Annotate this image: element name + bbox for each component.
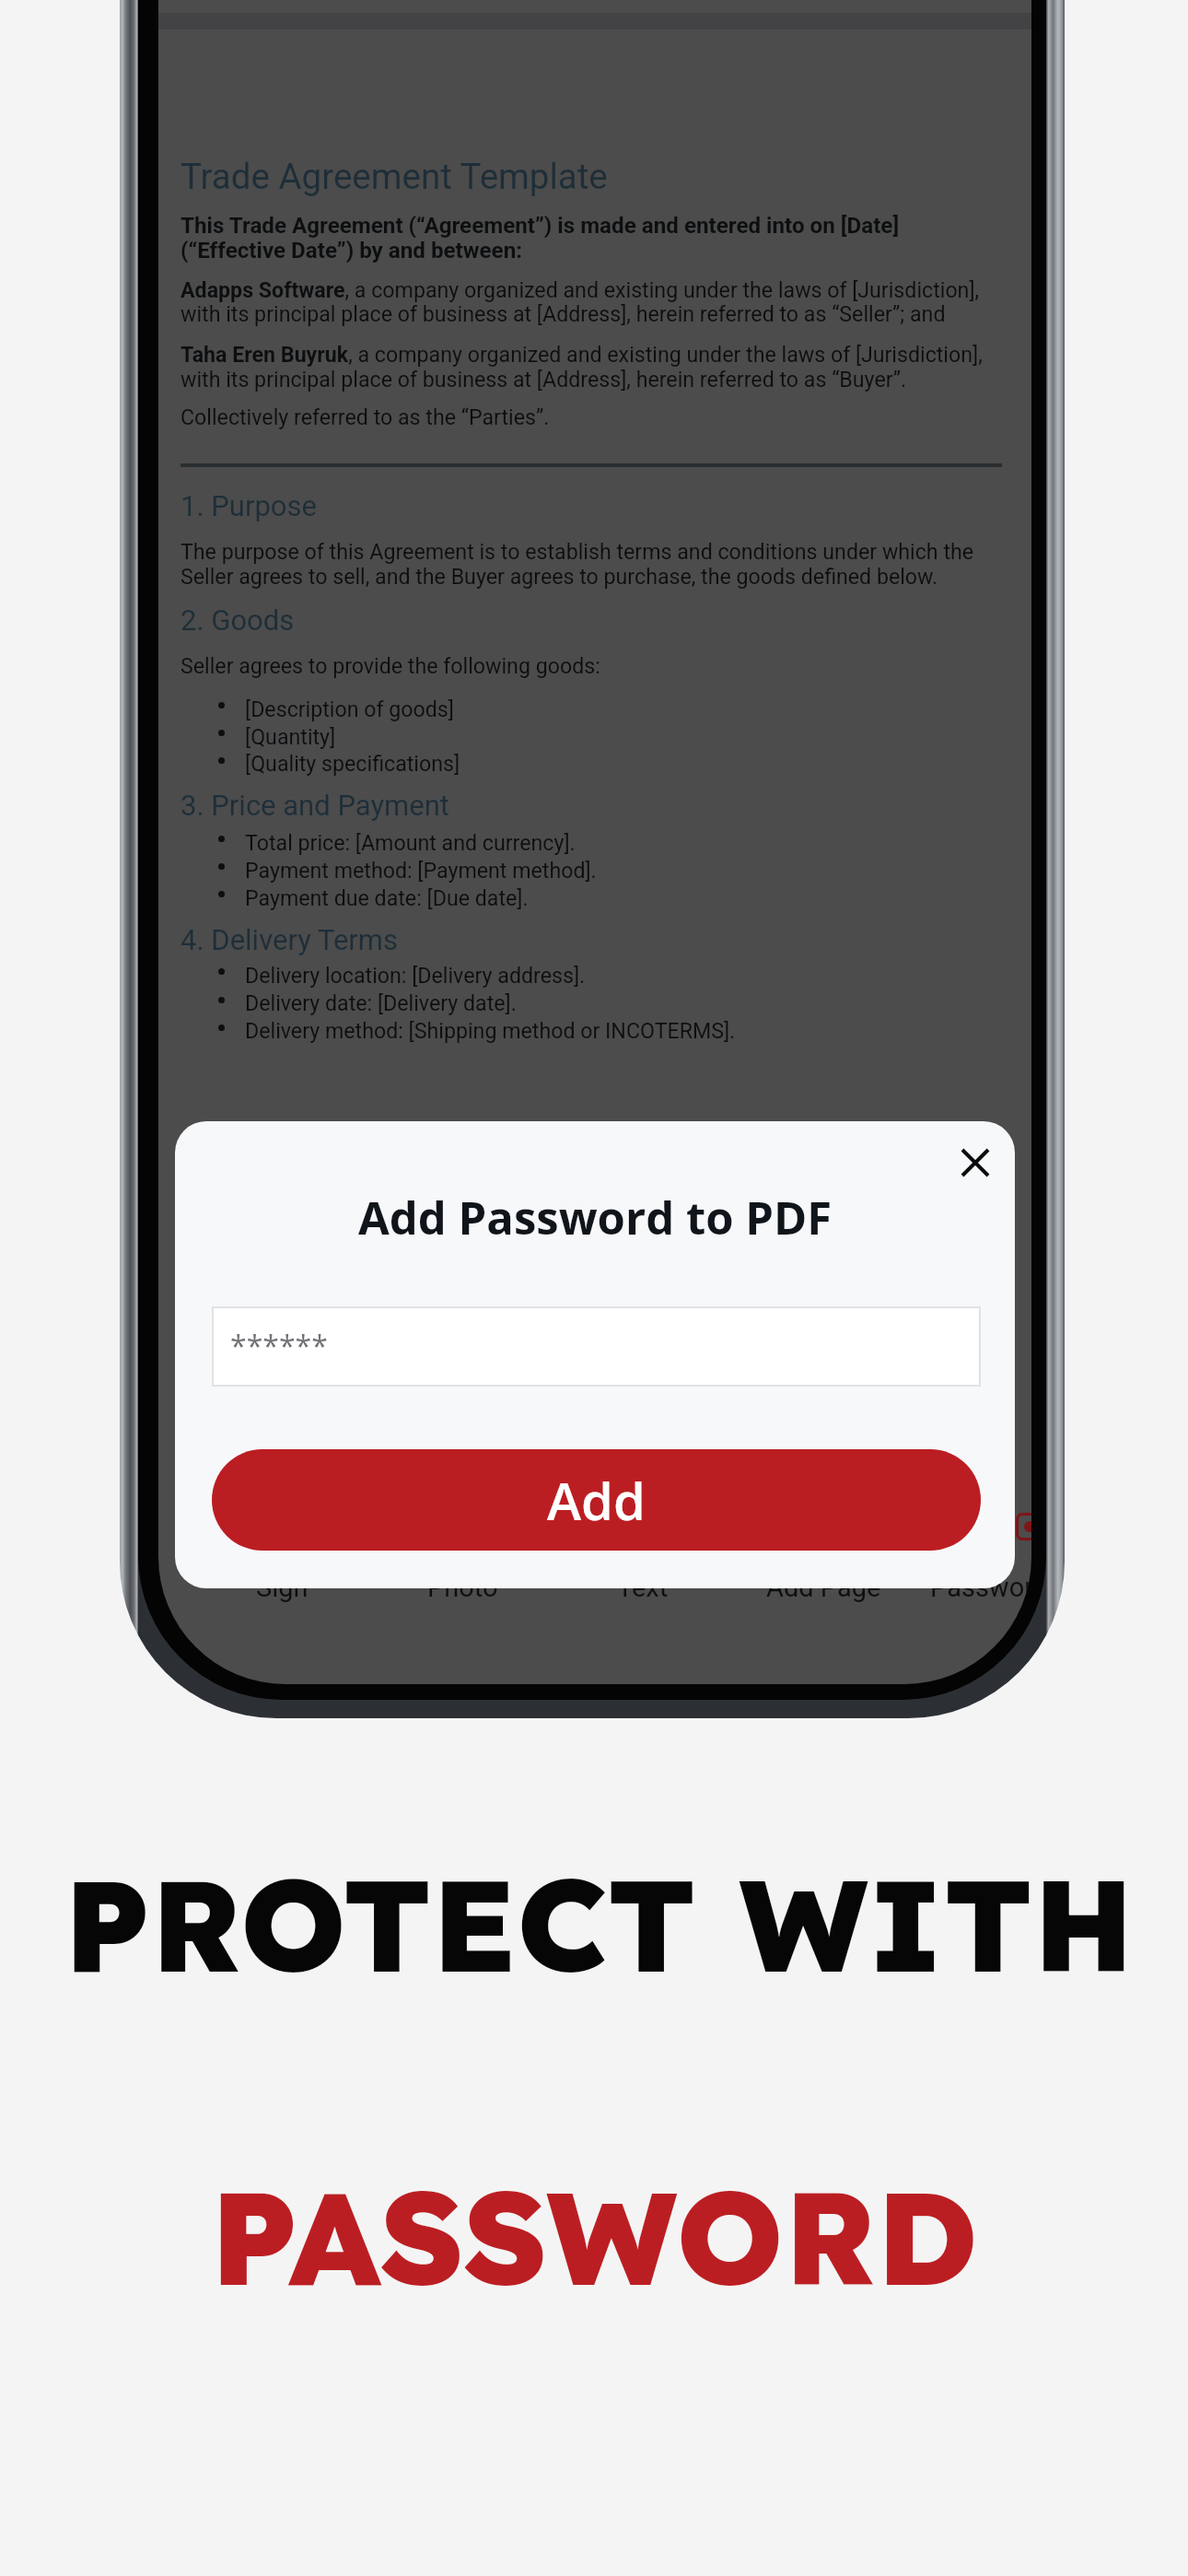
staticText: Payment method: [Payment method]. <box>245 858 597 883</box>
staticText: with its principal place of business at … <box>181 367 907 392</box>
staticText: Seller agrees to provide the following g… <box>181 653 600 678</box>
staticText: 2. Goods <box>181 603 295 637</box>
button[interactable] <box>212 1306 981 1387</box>
staticText: Add Page <box>766 1572 881 1603</box>
staticText: Trade Agreement Template <box>181 156 608 197</box>
staticText: [Quality specifications] <box>245 751 460 776</box>
staticText: Delivery date: [Delivery date]. <box>245 990 517 1015</box>
button[interactable]: Text <box>553 1566 733 1677</box>
staticText: Add <box>547 1465 646 1535</box>
button[interactable]: Close dialog <box>941 1129 1009 1197</box>
staticText: [Quantity] <box>245 724 336 749</box>
staticText: ****** <box>230 1326 328 1366</box>
staticText: 3. Price and Payment <box>181 789 449 822</box>
staticText: with its principal place of business at … <box>181 301 946 326</box>
staticText: PROTECT WITH <box>64 1843 1135 2004</box>
staticText: Collectively referred to as the “Parties… <box>181 404 550 429</box>
staticText: PASSWORD <box>210 2154 979 2318</box>
staticText: Delivery location: [Delivery address]. <box>245 963 586 988</box>
staticText: Seller agrees to sell, and the Buyer agr… <box>181 564 938 589</box>
staticText: Add Password to PDF <box>358 1187 833 1248</box>
button[interactable]: Password <box>914 1566 1031 1677</box>
staticText: Adapps Software, a company organized and… <box>181 277 980 302</box>
button[interactable]: Photo <box>372 1566 553 1677</box>
staticText: Sign <box>256 1572 309 1603</box>
staticText: Taha Eren Buyruk, a company organized an… <box>181 342 983 367</box>
button[interactable]: Add <box>212 1449 981 1551</box>
staticText: Photo <box>427 1572 498 1603</box>
staticText: Total price: [Amount and currency]. <box>245 830 576 855</box>
staticText: Text <box>617 1572 669 1603</box>
staticText: The purpose of this Agreement is to esta… <box>181 539 974 564</box>
staticText: [Description of goods] <box>245 697 454 721</box>
staticText: 4. Delivery Terms <box>181 923 399 956</box>
staticText: Payment due date: [Due date]. <box>245 885 529 910</box>
staticText: This Trade Agreement (“Agreement”) is ma… <box>181 213 900 239</box>
staticText: Password <box>930 1572 1031 1603</box>
staticText: Delivery method: [Shipping method or INC… <box>245 1018 736 1043</box>
button[interactable]: Add Page <box>733 1566 914 1677</box>
staticText: 1. Purpose <box>181 489 317 522</box>
staticText: (“Effective Date”) by and between: <box>181 238 523 263</box>
button[interactable]: Sign <box>192 1566 372 1677</box>
